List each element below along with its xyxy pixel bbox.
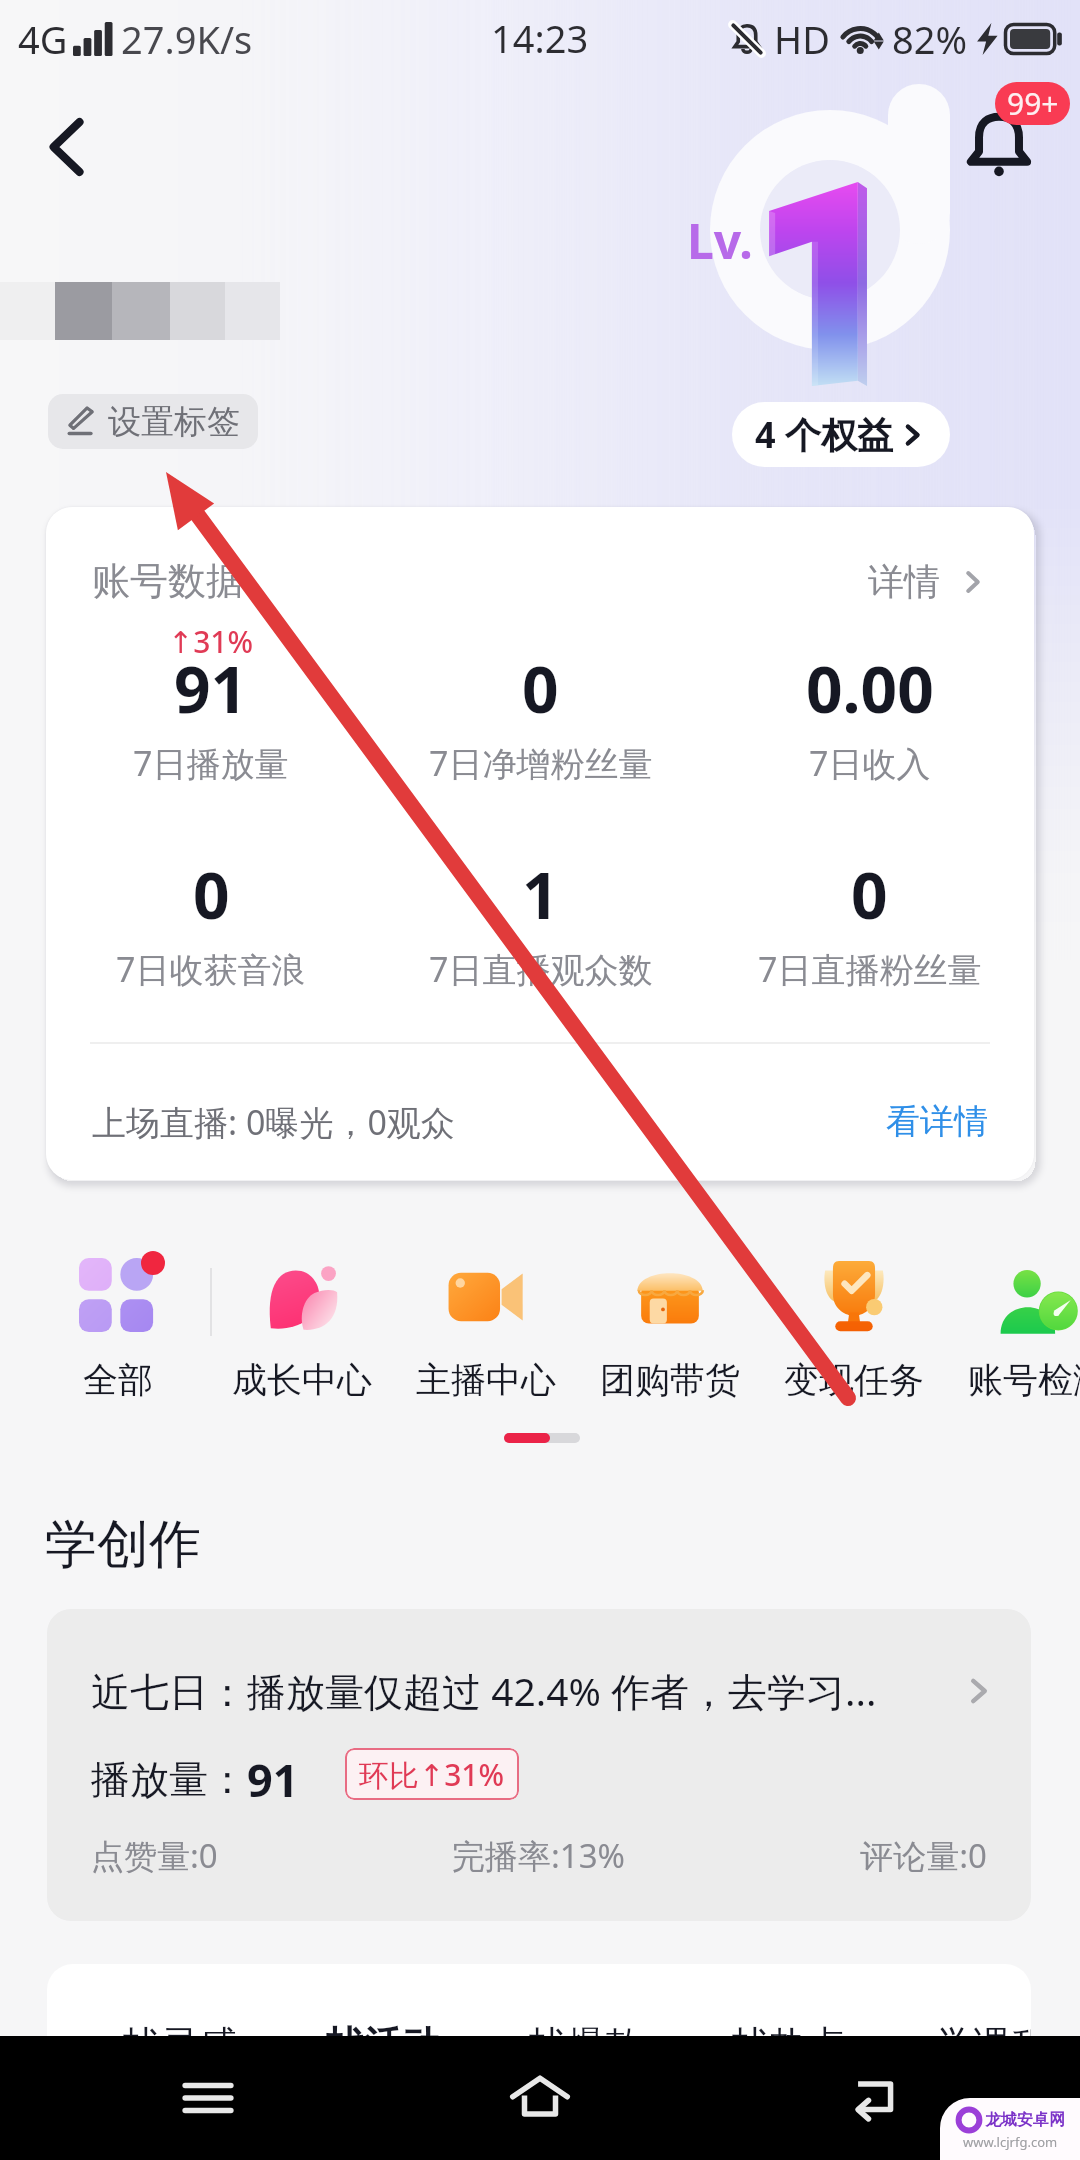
staticText: 账号数据 (92, 557, 244, 605)
staticText: 学创作 (45, 1512, 201, 1578)
button[interactable]: 成长中心 (210, 1232, 394, 1402)
button[interactable]: 设置标签 (48, 394, 258, 449)
staticText: ↑31% (168, 621, 254, 662)
staticText: 播放量： (91, 1755, 247, 1804)
staticText: 0 (851, 851, 888, 938)
button[interactable]: 找灵感 (47, 1964, 1031, 2040)
button[interactable]: 主播中心 (394, 1232, 578, 1402)
staticText: 成长中心 (232, 1358, 372, 1402)
button[interactable]: 账号检测 (946, 1232, 1080, 1402)
staticText: 完播率:13% (389, 1833, 688, 1878)
button[interactable]: 看详情 (862, 1092, 988, 1151)
staticText: 详情 (868, 559, 940, 604)
staticText: 环比↑31% (359, 1754, 505, 1795)
staticText: 找热点 (732, 2021, 846, 2040)
staticText: 7日收入 (809, 740, 931, 786)
staticText: HD (774, 13, 830, 65)
button[interactable]: 近七日：播放量仅超过 42.4% 作者，去学习... (47, 1609, 1031, 1921)
staticText: 0.00 (806, 645, 934, 732)
staticText: 91 (174, 645, 248, 732)
button[interactable]: Home (500, 2058, 580, 2138)
staticText: 账号检测 (968, 1358, 1080, 1402)
button[interactable]: Notifications (962, 110, 1036, 184)
staticText: 找活动 (326, 2021, 440, 2040)
staticText: 主播中心 (416, 1358, 556, 1402)
staticText: 0 (522, 645, 559, 732)
staticText: 27.9K/s (121, 13, 253, 65)
staticText: 评论量:0 (688, 1833, 987, 1878)
button[interactable]: 4 个权益 (732, 402, 950, 467)
button[interactable]: 团购带货 (578, 1232, 762, 1402)
staticText: Lv. (687, 208, 753, 273)
staticText: 7日收获音浪 (116, 946, 306, 992)
staticText: 团购带货 (600, 1358, 740, 1402)
staticText: 0 (193, 851, 230, 938)
staticText: www.lcjrfg.com (963, 2133, 1058, 2151)
staticText: 上场直播: 0曝光，0观众 (92, 1099, 455, 1145)
button[interactable]: 账号数据 (46, 507, 1034, 1180)
staticText: 99+ (1007, 83, 1059, 124)
staticText: 7日净增粉丝量 (429, 740, 653, 786)
button[interactable]: Back (26, 108, 104, 186)
button[interactable]: Recents (168, 2058, 248, 2138)
staticText: 14:23 (491, 12, 589, 64)
staticText: 82% (892, 13, 968, 65)
staticText: 7日直播粉丝量 (758, 946, 982, 992)
staticText: 找灵感 (123, 2021, 237, 2040)
button[interactable]: 变现任务 (762, 1232, 946, 1402)
staticText: 4G (18, 13, 68, 65)
staticText: 7日播放量 (133, 740, 289, 786)
staticText: 变现任务 (784, 1358, 924, 1402)
staticText: 全部 (83, 1358, 153, 1402)
button[interactable]: Back (832, 2058, 912, 2138)
staticText: 1 (522, 851, 559, 938)
staticText: 找爆款 (529, 2021, 643, 2040)
staticText: 4 个权益 (755, 410, 893, 459)
staticText: 龙城安卓网 (985, 2110, 1065, 2130)
staticText: 学课程 (935, 2021, 1031, 2040)
staticText: 看详情 (886, 1100, 988, 1143)
staticText: 91 (247, 1749, 299, 1810)
staticText: 7日直播观众数 (429, 946, 653, 992)
staticText: 点赞量:0 (91, 1833, 389, 1878)
button[interactable]: 全部 (26, 1232, 210, 1402)
staticText: 近七日：播放量仅超过 42.4% 作者，去学习... (91, 1664, 961, 1717)
button[interactable]: 详情 (848, 559, 988, 604)
staticText: 设置标签 (108, 401, 240, 443)
